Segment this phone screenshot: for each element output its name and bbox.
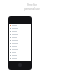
button[interactable] <box>9 27 31 30</box>
button[interactable] <box>9 48 31 51</box>
button[interactable] <box>9 24 31 27</box>
button[interactable] <box>9 30 31 33</box>
button[interactable] <box>9 36 31 39</box>
button[interactable]: Home <box>18 63 22 67</box>
button[interactable] <box>9 42 31 45</box>
button[interactable] <box>9 54 31 57</box>
button[interactable] <box>9 45 31 48</box>
button[interactable] <box>9 39 31 42</box>
button[interactable] <box>9 33 31 36</box>
button[interactable] <box>9 51 31 54</box>
staticText: Free for <box>27 3 37 7</box>
staticText: personal use <box>24 7 40 11</box>
button[interactable] <box>9 57 31 60</box>
